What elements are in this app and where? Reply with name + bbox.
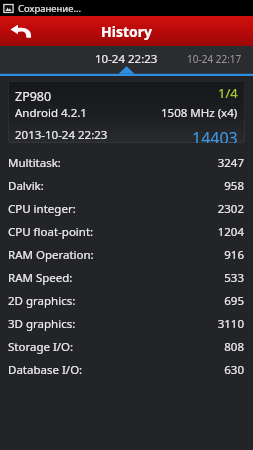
staticText: 808 [224, 339, 244, 355]
button[interactable]: Multitask: [0, 151, 253, 174]
staticText: 1204 [217, 224, 244, 240]
staticText: Storage I/O: [8, 339, 74, 355]
staticText: 10-24 22:17 [187, 52, 242, 66]
staticText: 14403 [192, 127, 238, 143]
button[interactable]: CPU integer: [0, 197, 253, 220]
staticText: 10-24 22:23 [95, 51, 158, 67]
staticText: 2013-10-24 22:23 [15, 127, 108, 143]
staticText: CPU integer: [8, 201, 76, 217]
button[interactable]: 3D graphics: [0, 312, 253, 335]
staticText: RAM Speed: [8, 270, 73, 286]
staticText: RAM Operation: [8, 247, 94, 263]
staticText: Database I/O: [8, 362, 83, 378]
staticText: Dalvik: [8, 178, 44, 194]
button[interactable]: Dalvik: [0, 174, 253, 197]
staticText: CPU float-point: [8, 224, 94, 240]
staticText: Сохранение... [18, 2, 82, 15]
button[interactable]: 10-24 22:17 [175, 46, 253, 76]
staticText: 958 [224, 178, 244, 194]
button[interactable]: Database I/O: [0, 358, 253, 381]
staticText: 1/4 [218, 84, 238, 102]
button[interactable]: 2D graphics: [0, 289, 253, 312]
button[interactable]: ZP980 [8, 81, 245, 143]
button[interactable]: 10-24 22:23 [78, 46, 175, 76]
staticText: 695 [224, 293, 244, 309]
button[interactable]: Storage I/O: [0, 335, 253, 358]
staticText: Android 4.2.1 [15, 105, 87, 121]
staticText: ZP980 [15, 88, 52, 105]
staticText: 533 [224, 270, 244, 286]
staticText: History [101, 22, 153, 41]
staticText: 1508 MHz (x4) [161, 105, 238, 121]
staticText: 2302 [217, 201, 244, 217]
button[interactable]: Back [0, 16, 42, 46]
staticText: 2D graphics: [8, 293, 76, 309]
staticText: 916 [224, 247, 244, 263]
button[interactable]: RAM Speed: [0, 266, 253, 289]
staticText: 3247 [217, 155, 244, 171]
staticText: Multitask: [8, 155, 61, 171]
staticText: 3110 [217, 316, 244, 332]
button[interactable]: CPU float-point: [0, 220, 253, 243]
staticText: 3D graphics: [8, 316, 76, 332]
staticText: 630 [224, 362, 244, 378]
button[interactable]: RAM Operation: [0, 243, 253, 266]
